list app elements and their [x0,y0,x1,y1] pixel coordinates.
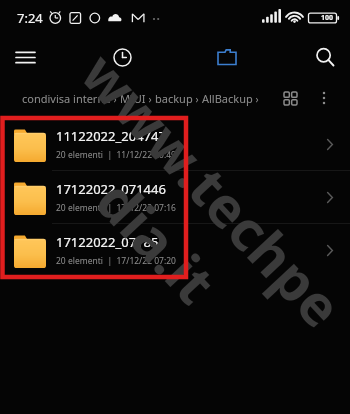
button[interactable]: Search [308,40,342,74]
button[interactable]: Grid view [276,84,304,112]
staticText: backup [155,91,193,106]
staticText: 17122022_071446 [56,180,166,198]
button[interactable]: 11122022_204747 [0,118,350,170]
staticText: 17122022_071858 [56,233,166,251]
button[interactable]: Files [210,40,244,74]
staticText: › [193,92,202,106]
button[interactable]: Menu [8,40,42,74]
staticText: MIUI [120,91,146,106]
staticText: › [146,92,155,106]
button[interactable]: 17122022_071858 [0,224,350,276]
staticText: 100 [321,13,334,23]
staticText: 7:24 [17,9,43,27]
staticText: 20 elementi | 11/12/22 20:49 [56,149,176,161]
button[interactable]: 17122022_071446 [0,171,350,223]
button[interactable]: More options [310,84,338,112]
staticText: condivisa interna [22,91,111,106]
button[interactable]: Recent [105,40,139,74]
staticText: › [111,92,120,106]
staticText: 20 elementi | 17/12/22 07:16 [56,202,176,214]
staticText: › [253,92,259,106]
staticText: 11122022_204747 [56,127,166,145]
button[interactable]: condivisa interna [22,91,259,106]
staticText: 20 elementi | 17/12/22 07:20 [56,255,176,267]
staticText: www.techpedia.it [10,35,350,395]
staticText: AllBackup [202,91,253,106]
